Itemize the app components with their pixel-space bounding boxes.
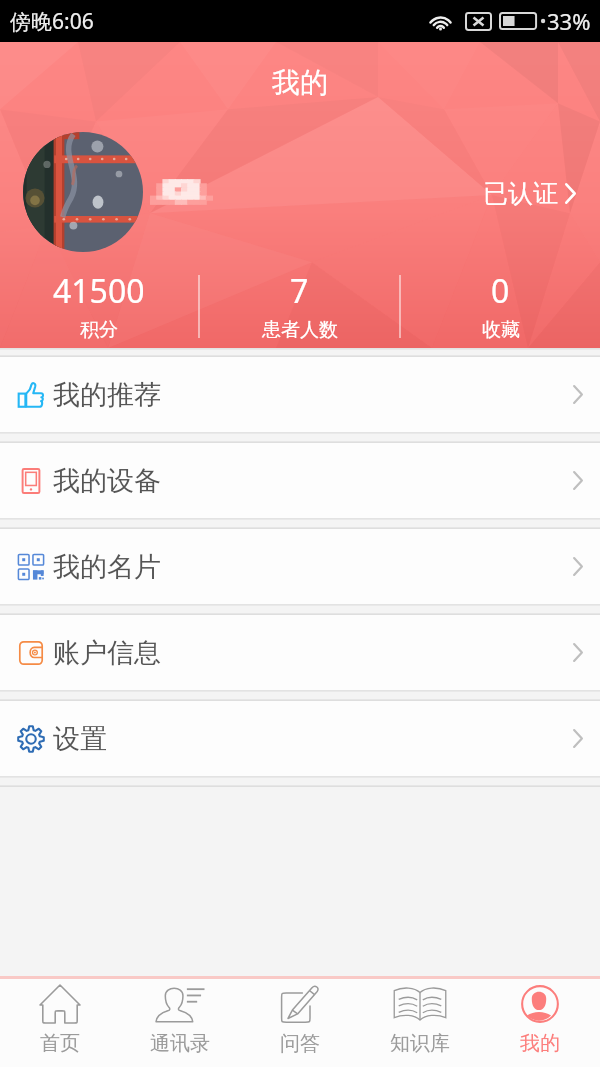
staticText: 通讯录 xyxy=(150,1031,210,1056)
staticText: 0 xyxy=(491,269,510,313)
button[interactable]: 7 xyxy=(200,269,399,342)
staticText: 积分 xyxy=(80,318,118,342)
staticText: 问答 xyxy=(280,1031,320,1056)
staticText: 设置 xyxy=(53,722,107,756)
staticText: 7 xyxy=(290,269,309,313)
staticText: 知识库 xyxy=(390,1031,450,1056)
button[interactable]: 我的推荐 xyxy=(0,357,600,432)
button[interactable]: Profile photo xyxy=(23,132,143,252)
staticText: 账户信息 xyxy=(53,636,161,670)
staticText: 收藏 xyxy=(482,318,520,342)
button[interactable]: 通讯录 xyxy=(120,979,240,1067)
staticText: 已认证 xyxy=(483,178,558,209)
button[interactable]: 0 xyxy=(401,269,600,342)
button[interactable]: 首页 xyxy=(0,979,120,1067)
staticText: 41500 xyxy=(53,269,145,313)
button[interactable]: 我的名片 xyxy=(0,529,600,604)
staticText: 首页 xyxy=(40,1031,80,1056)
button[interactable]: 41500 xyxy=(0,269,198,342)
button[interactable]: 已认证 xyxy=(467,168,600,219)
staticText: 我的 xyxy=(520,1031,560,1056)
staticText: 我的推荐 xyxy=(53,378,161,412)
button[interactable]: 账户信息 xyxy=(0,615,600,690)
staticText: 我的设备 xyxy=(53,464,161,498)
button[interactable]: 知识库 xyxy=(360,979,480,1067)
staticText: 我的 xyxy=(272,65,328,100)
staticText: 傍晚6:06 xyxy=(10,7,94,36)
button[interactable]: 设置 xyxy=(0,701,600,776)
button[interactable]: 我的 xyxy=(480,979,600,1067)
staticText: 我的名片 xyxy=(53,550,161,584)
button[interactable]: 问答 xyxy=(240,979,360,1067)
button[interactable]: 我的设备 xyxy=(0,443,600,518)
staticText: 患者人数 xyxy=(262,318,338,342)
staticText: 33% xyxy=(547,6,591,36)
